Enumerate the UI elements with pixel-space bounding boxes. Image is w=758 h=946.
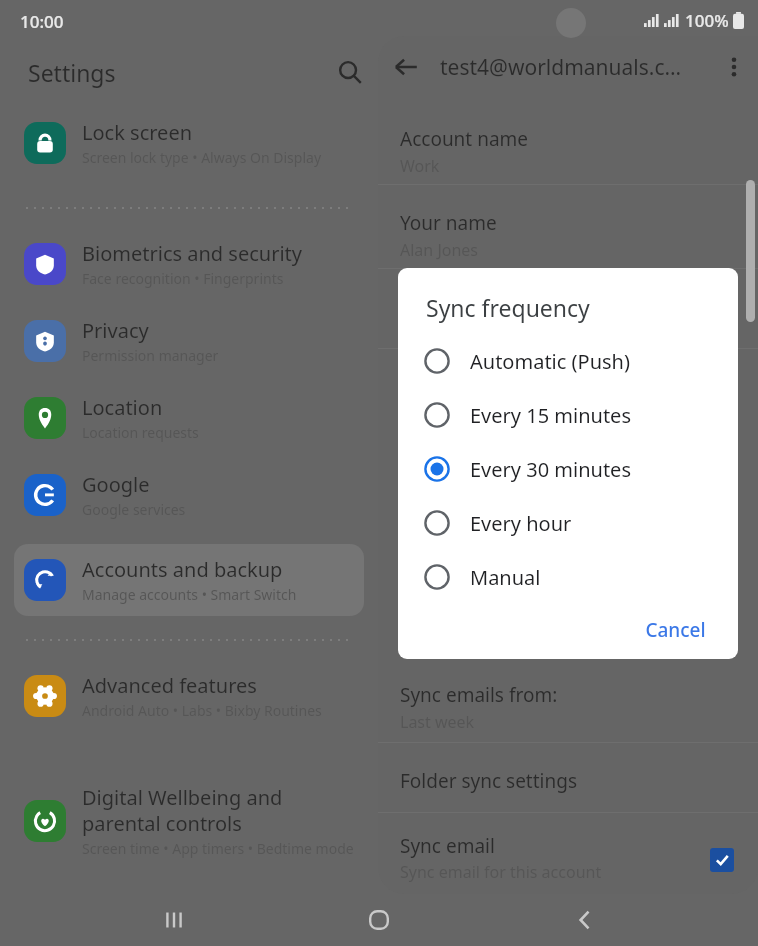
staticText: 100% bbox=[685, 9, 729, 32]
staticText: Face recognition • Fingerprints bbox=[82, 269, 284, 288]
button[interactable]: Digital Wellbeing and parental controls bbox=[14, 780, 364, 862]
button[interactable]: Lock screen bbox=[14, 115, 364, 171]
button[interactable]: Sync emails from: bbox=[378, 668, 758, 747]
staticText: test4@worldmanuals.c… bbox=[440, 53, 682, 82]
staticText: Google services bbox=[82, 500, 186, 519]
staticText: Cancel bbox=[645, 617, 706, 643]
staticText: Every 15 minutes bbox=[470, 402, 631, 429]
staticText: Your name bbox=[400, 210, 497, 236]
staticText: Signature bbox=[400, 294, 487, 320]
button[interactable]: Sync email bbox=[378, 819, 758, 894]
button[interactable]: Every 15 minutes bbox=[398, 388, 738, 442]
staticText: Screen time • App timers • Bedtime mode bbox=[82, 839, 354, 858]
button[interactable]: Every 30 minutes bbox=[398, 442, 738, 496]
staticText: Sync emails from: bbox=[400, 682, 558, 708]
staticText: Biometrics and security bbox=[82, 240, 354, 267]
staticText: Digital Wellbeing and parental controls bbox=[82, 784, 354, 837]
button[interactable]: Home bbox=[347, 894, 411, 946]
button[interactable]: Back bbox=[553, 894, 617, 946]
button[interactable]: More options bbox=[710, 43, 758, 91]
button[interactable]: Biometrics and security bbox=[14, 236, 364, 292]
button[interactable]: Settings bbox=[28, 57, 116, 88]
button[interactable]: Google bbox=[14, 467, 364, 523]
button[interactable]: Cancel bbox=[631, 607, 720, 653]
staticText: Privacy bbox=[82, 317, 354, 344]
staticText: Manual bbox=[470, 564, 541, 591]
staticText: Advanced features bbox=[82, 672, 354, 699]
button[interactable]: Account name bbox=[378, 112, 758, 191]
staticText: Automatic (Push) bbox=[470, 348, 630, 375]
staticText: 10:00 bbox=[20, 10, 64, 33]
staticText: Sync email bbox=[400, 833, 495, 859]
staticText: Screen lock type • Always On Display bbox=[82, 148, 322, 167]
button[interactable]: Sync schedule bbox=[378, 596, 758, 650]
staticText: Location requests bbox=[82, 423, 199, 442]
staticText: Every hour bbox=[470, 510, 572, 537]
staticText: Lock screen bbox=[82, 119, 354, 146]
button[interactable]: Accounts and backup bbox=[14, 544, 364, 616]
button[interactable]: Advanced features bbox=[14, 668, 364, 724]
staticText: Last week bbox=[400, 711, 475, 733]
staticText: Manage accounts • Smart Switch bbox=[82, 585, 297, 604]
staticText: Android Auto • Labs • Bixby Routines bbox=[82, 701, 322, 720]
button[interactable]: Signature bbox=[378, 280, 758, 334]
button[interactable]: Location bbox=[14, 390, 364, 446]
staticText: Permission manager bbox=[82, 346, 219, 365]
button[interactable]: Search bbox=[330, 48, 370, 96]
staticText: Alan Jones bbox=[400, 239, 479, 261]
staticText: Every 30 minutes bbox=[470, 456, 631, 483]
button[interactable]: Manual bbox=[398, 550, 738, 604]
button[interactable]: Back bbox=[378, 39, 434, 95]
staticText: Accounts and backup bbox=[82, 556, 354, 583]
staticText: Account name bbox=[400, 126, 529, 152]
staticText: Work bbox=[400, 155, 440, 177]
button[interactable]: Privacy bbox=[14, 313, 364, 369]
staticText: Folder sync settings bbox=[400, 768, 578, 794]
button[interactable]: Folder sync settings bbox=[378, 754, 758, 808]
staticText: Location bbox=[82, 394, 354, 421]
staticText: Sync frequency bbox=[426, 292, 590, 323]
button[interactable]: Recents bbox=[142, 894, 206, 946]
button[interactable]: Your name bbox=[378, 196, 758, 275]
staticText: Sync email for this account bbox=[400, 861, 602, 883]
button[interactable]: Every hour bbox=[398, 496, 738, 550]
button[interactable]: Automatic (Push) bbox=[398, 334, 738, 388]
staticText: Google bbox=[82, 471, 354, 498]
